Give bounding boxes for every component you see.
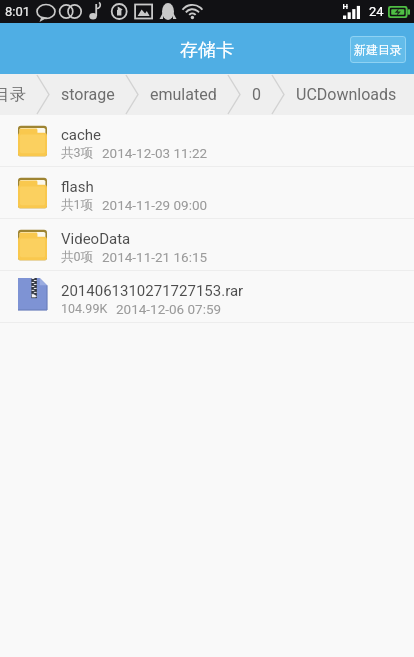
staticText: VideoData bbox=[61, 230, 131, 248]
staticText: 2014-11-21 16:15 bbox=[102, 249, 208, 265]
staticText: 2014061310271727153.rar bbox=[61, 282, 244, 300]
staticText: 共0项 bbox=[61, 249, 94, 265]
staticText: 新建目录 bbox=[354, 42, 402, 57]
staticText: 2014-12-03 11:22 bbox=[102, 145, 208, 161]
staticText: 8:01 bbox=[5, 4, 31, 19]
staticText: 24 bbox=[369, 4, 384, 19]
button[interactable]: emulated bbox=[139, 75, 228, 114]
button[interactable]: 根目录 bbox=[0, 75, 37, 115]
staticText: 0 bbox=[252, 85, 261, 104]
button[interactable]: 0 bbox=[241, 75, 272, 114]
staticText: 存储卡 bbox=[180, 39, 234, 62]
button[interactable]: flash bbox=[0, 167, 414, 218]
staticText: UCDownloads bbox=[296, 85, 397, 104]
button[interactable]: 2014061310271727153.rar bbox=[0, 271, 414, 322]
staticText: cache bbox=[61, 126, 102, 144]
button[interactable]: VideoData bbox=[0, 219, 414, 270]
staticText: storage bbox=[61, 85, 115, 104]
staticText: 2014-12-06 07:59 bbox=[116, 301, 222, 317]
button[interactable]: UCDownloads bbox=[285, 75, 397, 114]
button[interactable]: 新建目录 bbox=[350, 36, 406, 63]
staticText: flash bbox=[61, 178, 94, 196]
staticText: 104.99K bbox=[61, 301, 108, 316]
staticText: emulated bbox=[150, 85, 217, 104]
button[interactable]: storage bbox=[50, 75, 126, 114]
staticText: 共3项 bbox=[61, 145, 94, 161]
staticText: 共1项 bbox=[61, 197, 94, 213]
button[interactable]: cache bbox=[0, 115, 414, 166]
staticText: 根目录 bbox=[0, 85, 26, 105]
staticText: 2014-11-29 09:00 bbox=[102, 197, 208, 213]
